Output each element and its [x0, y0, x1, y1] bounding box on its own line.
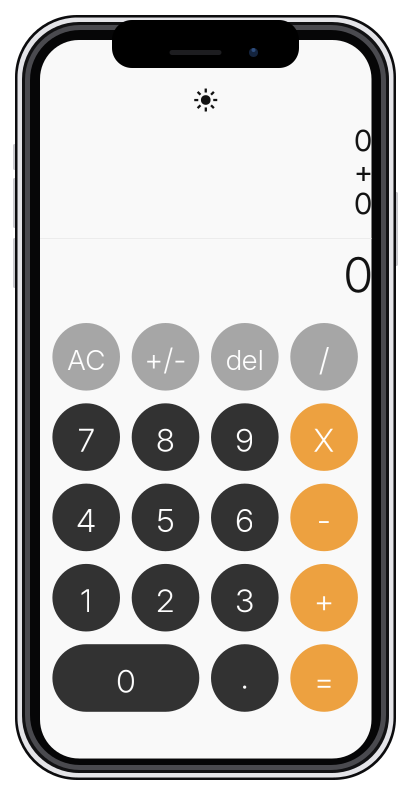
staticText: 7: [78, 421, 95, 459]
staticText: 8: [156, 421, 175, 459]
button[interactable]: 1: [52, 564, 120, 631]
button[interactable]: 3: [211, 564, 279, 631]
staticText: 9: [235, 421, 254, 459]
staticText: 2: [156, 581, 175, 620]
button[interactable]: /: [290, 323, 358, 391]
staticText: AC: [67, 343, 105, 377]
staticText: -: [317, 501, 331, 540]
button[interactable]: AC: [52, 323, 120, 391]
button[interactable]: +: [290, 564, 358, 631]
staticText: 5: [156, 501, 174, 540]
staticText: =: [314, 662, 334, 700]
staticText: 4: [76, 501, 96, 540]
staticText: +/-: [144, 342, 186, 378]
staticText: 0: [343, 245, 373, 305]
button[interactable]: 5: [132, 484, 199, 551]
button[interactable]: X: [290, 403, 358, 471]
button[interactable]: 7: [52, 403, 120, 471]
staticText: /: [319, 340, 329, 379]
button[interactable]: 9: [211, 403, 279, 471]
button[interactable]: =: [290, 644, 358, 712]
staticText: 0+0: [354, 123, 373, 221]
staticText: del: [226, 343, 264, 377]
staticText: X: [314, 421, 335, 459]
button[interactable]: +/-: [132, 323, 199, 391]
staticText: 0: [116, 662, 135, 700]
staticText: 3: [235, 581, 254, 620]
staticText: 1: [80, 581, 92, 620]
button[interactable]: del: [211, 323, 279, 391]
staticText: 6: [235, 501, 254, 540]
button[interactable]: -: [290, 484, 358, 551]
button[interactable]: .: [211, 644, 279, 712]
button[interactable]: 6: [211, 484, 279, 551]
button[interactable]: 2: [132, 564, 199, 631]
button[interactable]: 4: [52, 484, 120, 551]
staticText: +: [314, 581, 334, 620]
button[interactable]: Toggle appearance: [184, 78, 228, 122]
staticText: .: [241, 658, 249, 696]
button[interactable]: 8: [132, 403, 199, 471]
button[interactable]: 0: [52, 644, 199, 712]
